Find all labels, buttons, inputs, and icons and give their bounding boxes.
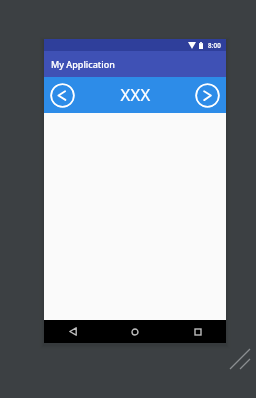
button[interactable]: Recents xyxy=(186,320,209,343)
button[interactable]: Previous xyxy=(50,83,75,108)
staticText: XXX xyxy=(120,83,151,105)
button[interactable]: Back xyxy=(61,320,84,343)
staticText: My Application xyxy=(51,58,115,70)
button[interactable]: Next xyxy=(195,83,220,108)
button[interactable]: Home xyxy=(123,320,146,343)
staticText: 8:00 xyxy=(208,41,222,49)
